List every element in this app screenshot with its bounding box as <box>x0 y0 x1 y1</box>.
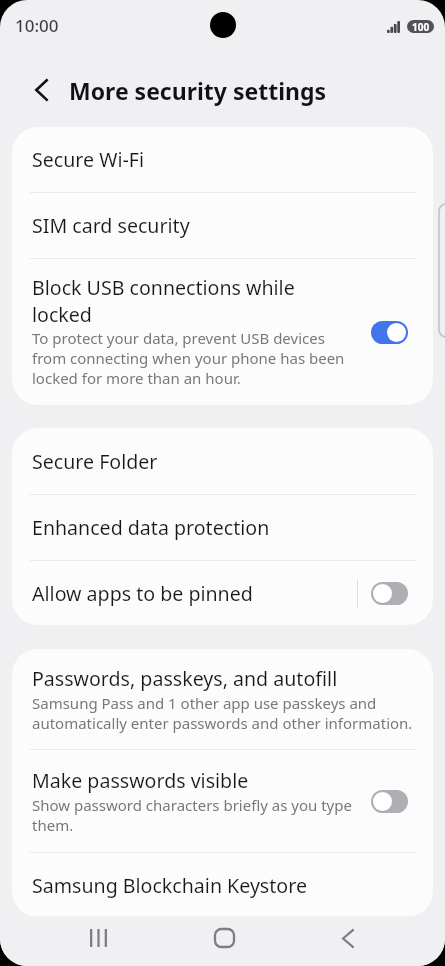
button[interactable]: Block USB connections while locked <box>12 259 433 405</box>
button[interactable]: Turn off <box>371 321 408 344</box>
button[interactable]: Home <box>186 916 262 960</box>
staticText: Samsung Pass and 1 other app use passkey… <box>32 693 414 733</box>
staticText: Block USB connections while locked <box>32 274 304 328</box>
button[interactable]: Make passwords visible <box>12 750 433 852</box>
staticText: Samsung Blockchain Keystore <box>32 872 307 899</box>
staticText: To protect your data, prevent USB device… <box>32 328 358 388</box>
button[interactable]: Navigate up <box>22 71 60 109</box>
button[interactable]: Samsung Blockchain Keystore <box>12 853 433 917</box>
staticText: Passwords, passkeys, and autofill <box>32 665 338 692</box>
button[interactable]: Secure Folder <box>12 428 433 494</box>
staticText: More security settings <box>69 75 327 106</box>
button[interactable]: Enhanced data protection <box>12 495 433 560</box>
button[interactable]: Back <box>310 916 386 960</box>
staticText: Secure Wi-Fi <box>32 146 144 173</box>
button[interactable]: Allow apps to be pinned <box>12 561 433 625</box>
button[interactable]: Secure Wi-Fi <box>12 127 433 192</box>
button[interactable]: SIM card security <box>12 193 433 258</box>
staticText: Make passwords visible <box>32 767 249 794</box>
staticText: 10:00 <box>15 14 59 37</box>
staticText: Show password characters briefly as you … <box>32 795 359 835</box>
button[interactable]: Turn on <box>371 582 408 605</box>
button[interactable]: Recent apps <box>60 916 136 960</box>
staticText: SIM card security <box>32 212 190 239</box>
staticText: Secure Folder <box>32 448 158 475</box>
button[interactable]: Turn on <box>371 790 408 813</box>
button[interactable]: Passwords, passkeys, and autofill <box>12 649 433 749</box>
staticText: Enhanced data protection <box>32 514 270 541</box>
staticText: 100 <box>412 20 430 33</box>
staticText: Allow apps to be pinned <box>32 580 253 607</box>
